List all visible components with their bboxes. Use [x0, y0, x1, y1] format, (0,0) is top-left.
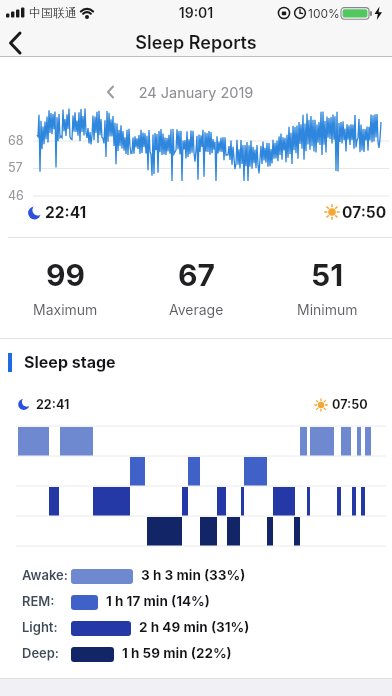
staticText: 中国联通: [29, 5, 77, 20]
staticText: 22:41: [36, 397, 70, 412]
button[interactable]: Awake:: [0, 564, 392, 588]
staticText: Sleep stage: [24, 352, 116, 371]
button[interactable]: Light:: [0, 616, 392, 640]
staticText: 57: [8, 160, 23, 175]
staticText: 67: [178, 257, 215, 293]
staticText: Average: [169, 301, 224, 318]
button[interactable]: [100, 80, 292, 104]
staticText: 51: [311, 257, 344, 293]
staticText: 100%: [308, 6, 340, 21]
staticText: Light:: [22, 619, 58, 635]
staticText: Awake:: [22, 567, 68, 583]
staticText: Minimum: [297, 301, 358, 318]
staticText: 68: [8, 133, 24, 148]
staticText: Deep:: [22, 645, 60, 661]
staticText: 99: [46, 257, 85, 293]
staticText: 22:41: [45, 203, 87, 222]
button[interactable]: Deep:: [0, 642, 392, 666]
button[interactable]: [2, 28, 38, 58]
staticText: 19:01: [0, 4, 392, 21]
staticText: 07:50: [342, 203, 387, 222]
staticText: 1 h 17 min (14%): [106, 593, 210, 609]
staticText: 2 h 49 min (31%): [139, 619, 250, 635]
staticText: 07:50: [332, 397, 368, 412]
staticText: 46: [8, 188, 24, 203]
staticText: Sleep Reports: [0, 32, 392, 54]
staticText: 3 h 3 min (33%): [141, 567, 246, 583]
staticText: REM:: [22, 593, 55, 609]
staticText: Maximum: [33, 301, 98, 318]
button[interactable]: REM:: [0, 590, 392, 614]
staticText: 24 January 2019: [0, 84, 392, 102]
staticText: 1 h 59 min (22%): [122, 645, 232, 661]
